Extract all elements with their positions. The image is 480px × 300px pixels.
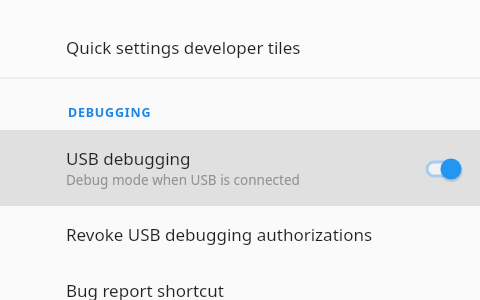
staticText: Quick settings developer tiles (66, 36, 301, 59)
staticText: USB debugging (66, 147, 191, 170)
button[interactable]: USB debugging (0, 130, 480, 206)
button[interactable]: Revoke USB debugging authorizations (0, 206, 480, 268)
staticText: Revoke USB debugging authorizations (66, 223, 373, 246)
button[interactable] (424, 148, 466, 188)
staticText: Debug mode when USB is connected (66, 171, 300, 189)
button[interactable]: Bug report shortcut (0, 268, 480, 300)
staticText: DEBUGGING (68, 104, 152, 121)
button[interactable]: Quick settings developer tiles (0, 0, 480, 78)
staticText: Bug report shortcut (66, 279, 224, 300)
